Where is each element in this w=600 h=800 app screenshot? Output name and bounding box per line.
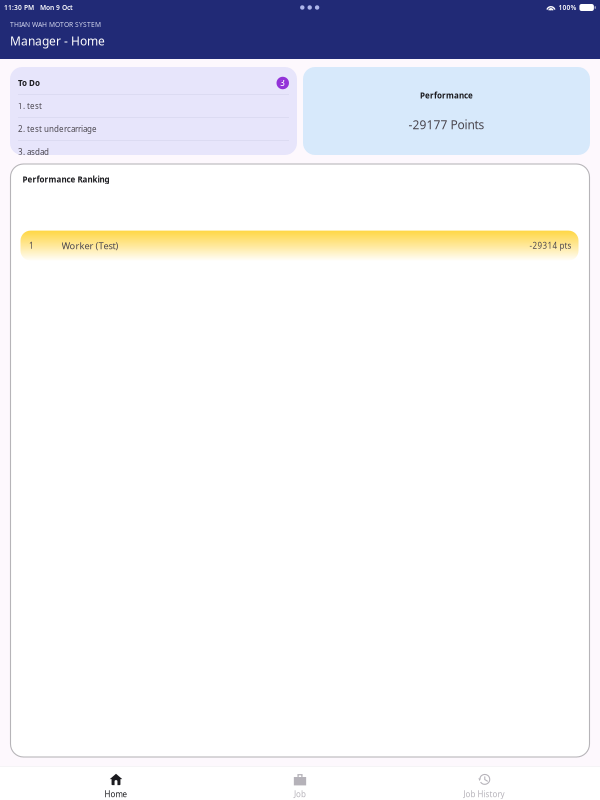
staticText: Performance Ranking — [22, 174, 109, 185]
staticText: To Do — [18, 78, 40, 88]
staticText: Home — [104, 789, 127, 799]
button[interactable]: Job History — [424, 767, 544, 800]
button[interactable]: 1 — [20, 231, 578, 261]
button[interactable]: Performance — [303, 67, 590, 155]
staticText: 3. asdad — [18, 146, 49, 157]
staticText: Performance — [420, 90, 473, 101]
staticText: Job History — [463, 789, 504, 799]
button[interactable]: Job — [240, 767, 360, 800]
staticText: Mon 9 Oct — [40, 3, 73, 12]
staticText: THIAN WAH MOTOR SYSTEM — [10, 20, 101, 29]
staticText: -29314 pts — [529, 240, 571, 251]
staticText: Job — [294, 789, 306, 799]
staticText: 2. test undercarriage — [18, 123, 97, 134]
staticText: Manager - Home — [10, 33, 105, 49]
button[interactable]: To Do — [10, 67, 297, 155]
staticText: 3 — [280, 78, 285, 88]
staticText: 100% — [558, 3, 576, 12]
button[interactable]: Home — [56, 767, 176, 800]
staticText: 11:30 PM — [4, 3, 34, 12]
staticText: 1. test — [18, 100, 42, 111]
staticText: 1 — [29, 240, 34, 251]
staticText: -29177 Points — [408, 117, 484, 132]
staticText: Worker (Test) — [61, 239, 118, 252]
